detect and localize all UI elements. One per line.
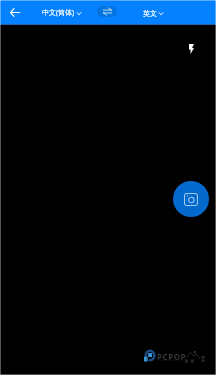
button[interactable]: Back [5,0,25,24]
staticText: 英文 [143,9,157,18]
button[interactable]: 英文 [142,5,164,21]
button[interactable]: Flash [183,40,200,57]
button[interactable]: Capture [173,181,209,217]
button[interactable]: 中文(简体) [41,5,82,21]
staticText: 中文(简体) [42,8,75,18]
staticText: PCPOP [157,351,187,362]
button[interactable]: Swap languages [97,6,117,17]
